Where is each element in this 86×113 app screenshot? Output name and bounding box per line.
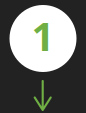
staticText: 1	[31, 9, 54, 62]
